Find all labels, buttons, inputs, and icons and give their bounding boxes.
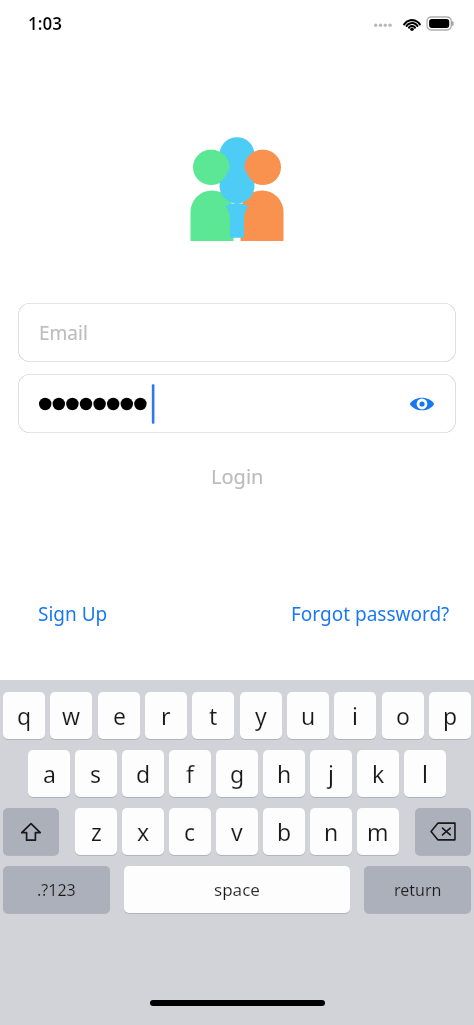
staticText: p (443, 700, 458, 731)
staticText: space (214, 878, 260, 901)
staticText: c (184, 816, 196, 847)
button[interactable]: Sign Up (20, 593, 126, 635)
staticText: Forgot password? (291, 601, 450, 627)
button[interactable]: v (216, 808, 258, 855)
button[interactable]: a (28, 750, 70, 797)
button[interactable]: c (169, 808, 211, 855)
button[interactable]: Shift (3, 808, 59, 855)
button[interactable]: z (75, 808, 117, 855)
staticText: f (186, 758, 194, 789)
button[interactable]: Show password (400, 382, 444, 426)
button[interactable]: o (382, 692, 424, 739)
staticText: n (324, 816, 339, 847)
button[interactable]: r (145, 692, 187, 739)
staticText: w (62, 700, 81, 731)
button[interactable]: p (429, 692, 471, 739)
button[interactable]: g (216, 750, 258, 797)
button[interactable]: e (98, 692, 140, 739)
button[interactable]: Email (18, 303, 456, 362)
button[interactable]: q (3, 692, 45, 739)
button[interactable] (18, 374, 456, 433)
button[interactable]: Login (0, 455, 474, 497)
staticText: v (231, 816, 243, 847)
button[interactable]: return (364, 866, 471, 913)
staticText: z (91, 816, 102, 847)
staticText: t (209, 700, 218, 731)
staticText: i (352, 700, 358, 731)
staticText: m (367, 816, 389, 847)
button[interactable]: y (240, 692, 282, 739)
staticText: Login (211, 463, 264, 490)
staticText: j (328, 758, 334, 789)
staticText: g (230, 758, 245, 789)
staticText: q (17, 700, 32, 731)
button[interactable]: s (75, 750, 117, 797)
staticText: Email (39, 320, 88, 346)
button[interactable]: b (263, 808, 305, 855)
staticText: return (394, 879, 442, 901)
staticText: s (90, 758, 102, 789)
button[interactable]: x (122, 808, 164, 855)
button[interactable]: m (357, 808, 399, 855)
staticText: e (113, 700, 126, 731)
button[interactable]: space (124, 866, 350, 913)
staticText: b (277, 816, 292, 847)
button[interactable]: n (310, 808, 352, 855)
staticText: x (137, 816, 150, 847)
button[interactable]: u (287, 692, 329, 739)
button[interactable]: j (310, 750, 352, 797)
staticText: .?123 (37, 879, 76, 901)
staticText: h (277, 758, 292, 789)
button[interactable]: i (334, 692, 376, 739)
staticText: Sign Up (38, 601, 108, 627)
button[interactable]: d (122, 750, 164, 797)
staticText: u (301, 700, 316, 731)
button[interactable]: w (50, 692, 92, 739)
button[interactable]: f (169, 750, 211, 797)
button[interactable]: h (263, 750, 305, 797)
button[interactable]: l (404, 750, 446, 797)
button[interactable]: Forgot password? (287, 593, 454, 635)
staticText: 1:03 (28, 12, 62, 35)
staticText: r (161, 700, 171, 731)
button[interactable]: Backspace (415, 808, 471, 855)
staticText: o (396, 700, 410, 731)
staticText: y (255, 700, 267, 731)
staticText: l (422, 758, 428, 789)
button[interactable]: t (192, 692, 234, 739)
staticText: d (136, 758, 151, 789)
button[interactable]: k (357, 750, 399, 797)
staticText: a (43, 758, 56, 789)
button[interactable]: .?123 (3, 866, 110, 913)
staticText: k (372, 758, 385, 789)
